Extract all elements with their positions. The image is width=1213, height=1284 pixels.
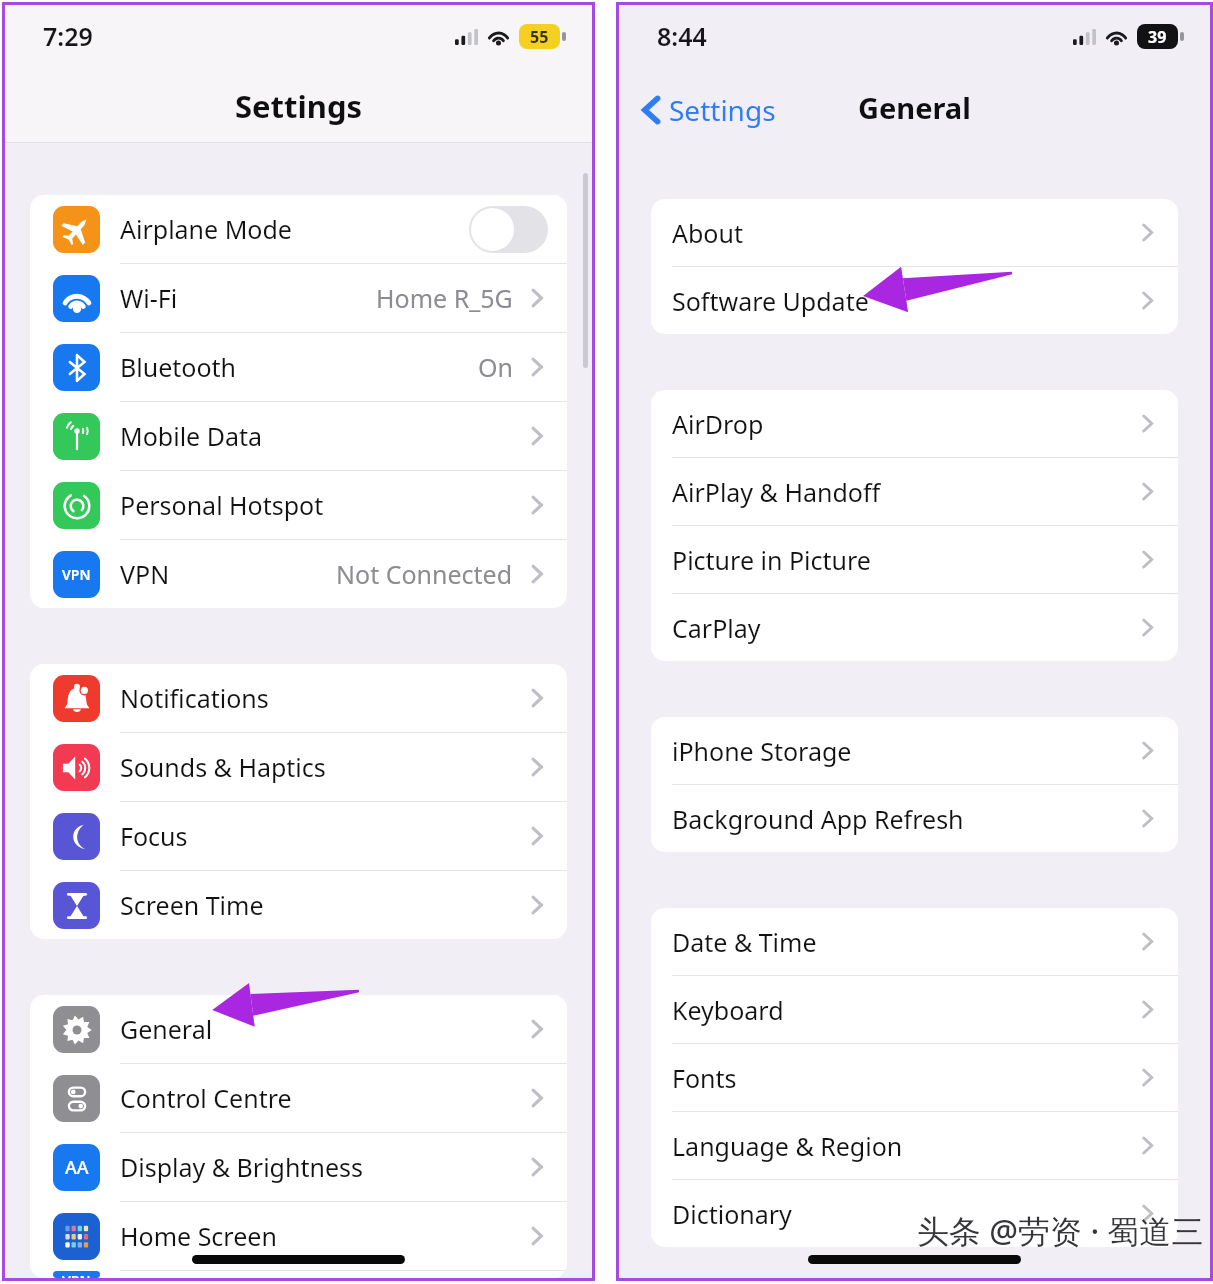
button[interactable]: iPhone Storage <box>651 717 1178 785</box>
staticText: Sounds & Haptics <box>120 750 526 784</box>
button[interactable]: Bluetooth <box>30 333 567 402</box>
staticText: CarPlay <box>672 611 1137 645</box>
staticText: Display & Brightness <box>120 1150 526 1184</box>
staticText: Settings <box>235 85 363 127</box>
button[interactable]: AirPlay & Handoff <box>651 458 1178 526</box>
button[interactable]: AA <box>30 1133 567 1202</box>
button[interactable]: About <box>651 199 1178 267</box>
staticText: 7:29 <box>43 19 93 53</box>
button[interactable]: Focus <box>30 802 567 871</box>
staticText: Wi-Fi <box>120 281 376 315</box>
staticText: Screen Time <box>120 888 526 922</box>
button[interactable]: Notifications <box>30 664 567 733</box>
staticText: VPN <box>62 565 91 584</box>
button[interactable]: Wi-Fi <box>30 264 567 333</box>
button[interactable]: Language & Region <box>651 1112 1178 1180</box>
button[interactable]: General <box>30 995 567 1064</box>
button[interactable]: Home Screen <box>30 1202 567 1271</box>
staticText: AirDrop <box>672 407 1137 441</box>
button[interactable]: Personal Hotspot <box>30 471 567 540</box>
button[interactable]: Date & Time <box>651 908 1178 976</box>
staticText: Mobile Data <box>120 419 526 453</box>
staticText: On <box>478 350 513 384</box>
staticText: Home R_5G <box>376 281 513 315</box>
button[interactable]: VPN <box>30 540 567 608</box>
button[interactable]: Screen Time <box>30 871 567 939</box>
staticText: Date & Time <box>672 925 1137 959</box>
button[interactable]: Control Centre <box>30 1064 567 1133</box>
staticText: 39 <box>1148 26 1167 48</box>
button[interactable]: CarPlay <box>651 594 1178 661</box>
staticText: Keyboard <box>672 993 1137 1027</box>
staticText: About <box>672 216 1137 250</box>
staticText: Focus <box>120 819 526 853</box>
staticText: 8:44 <box>657 19 707 53</box>
button[interactable]: Background App Refresh <box>651 785 1178 852</box>
staticText: 55 <box>530 26 549 48</box>
staticText: AA <box>65 1155 89 1180</box>
staticText: VPN <box>62 1271 91 1278</box>
staticText: Background App Refresh <box>672 802 1137 836</box>
staticText: VPN <box>120 557 336 591</box>
button[interactable]: Sounds & Haptics <box>30 733 567 802</box>
button[interactable]: Settings <box>640 91 776 129</box>
staticText: Airplane Mode <box>120 212 469 246</box>
button[interactable]: Airplane Mode <box>30 195 567 264</box>
staticText: General <box>858 88 971 127</box>
button[interactable]: AirDrop <box>651 390 1178 458</box>
staticText: Home Screen <box>120 1219 526 1253</box>
button[interactable]: Airplane Mode toggle <box>469 206 548 253</box>
staticText: 头条 @劳资 · 蜀道三 <box>917 1209 1204 1253</box>
staticText: Personal Hotspot <box>120 488 526 522</box>
button[interactable]: Dictionary <box>651 1180 1178 1247</box>
staticText: Notifications <box>120 681 526 715</box>
button[interactable]: VPN <box>30 1271 567 1278</box>
staticText: Picture in Picture <box>672 543 1137 577</box>
staticText: Control Centre <box>120 1081 526 1115</box>
staticText: iPhone Storage <box>672 734 1137 768</box>
staticText: Dictionary <box>672 1197 1137 1231</box>
staticText: Settings <box>669 91 776 129</box>
button[interactable]: Software Update <box>651 267 1178 334</box>
staticText: AirPlay & Handoff <box>672 475 1137 509</box>
staticText: Not Connected <box>336 557 513 591</box>
button[interactable]: Fonts <box>651 1044 1178 1112</box>
button[interactable]: Mobile Data <box>30 402 567 471</box>
staticText: Bluetooth <box>120 350 478 384</box>
staticText: General <box>120 1012 526 1046</box>
staticText: Fonts <box>672 1061 1137 1095</box>
staticText: Software Update <box>672 284 1137 318</box>
button[interactable]: Picture in Picture <box>651 526 1178 594</box>
button[interactable]: Keyboard <box>651 976 1178 1044</box>
staticText: Language & Region <box>672 1129 1137 1163</box>
